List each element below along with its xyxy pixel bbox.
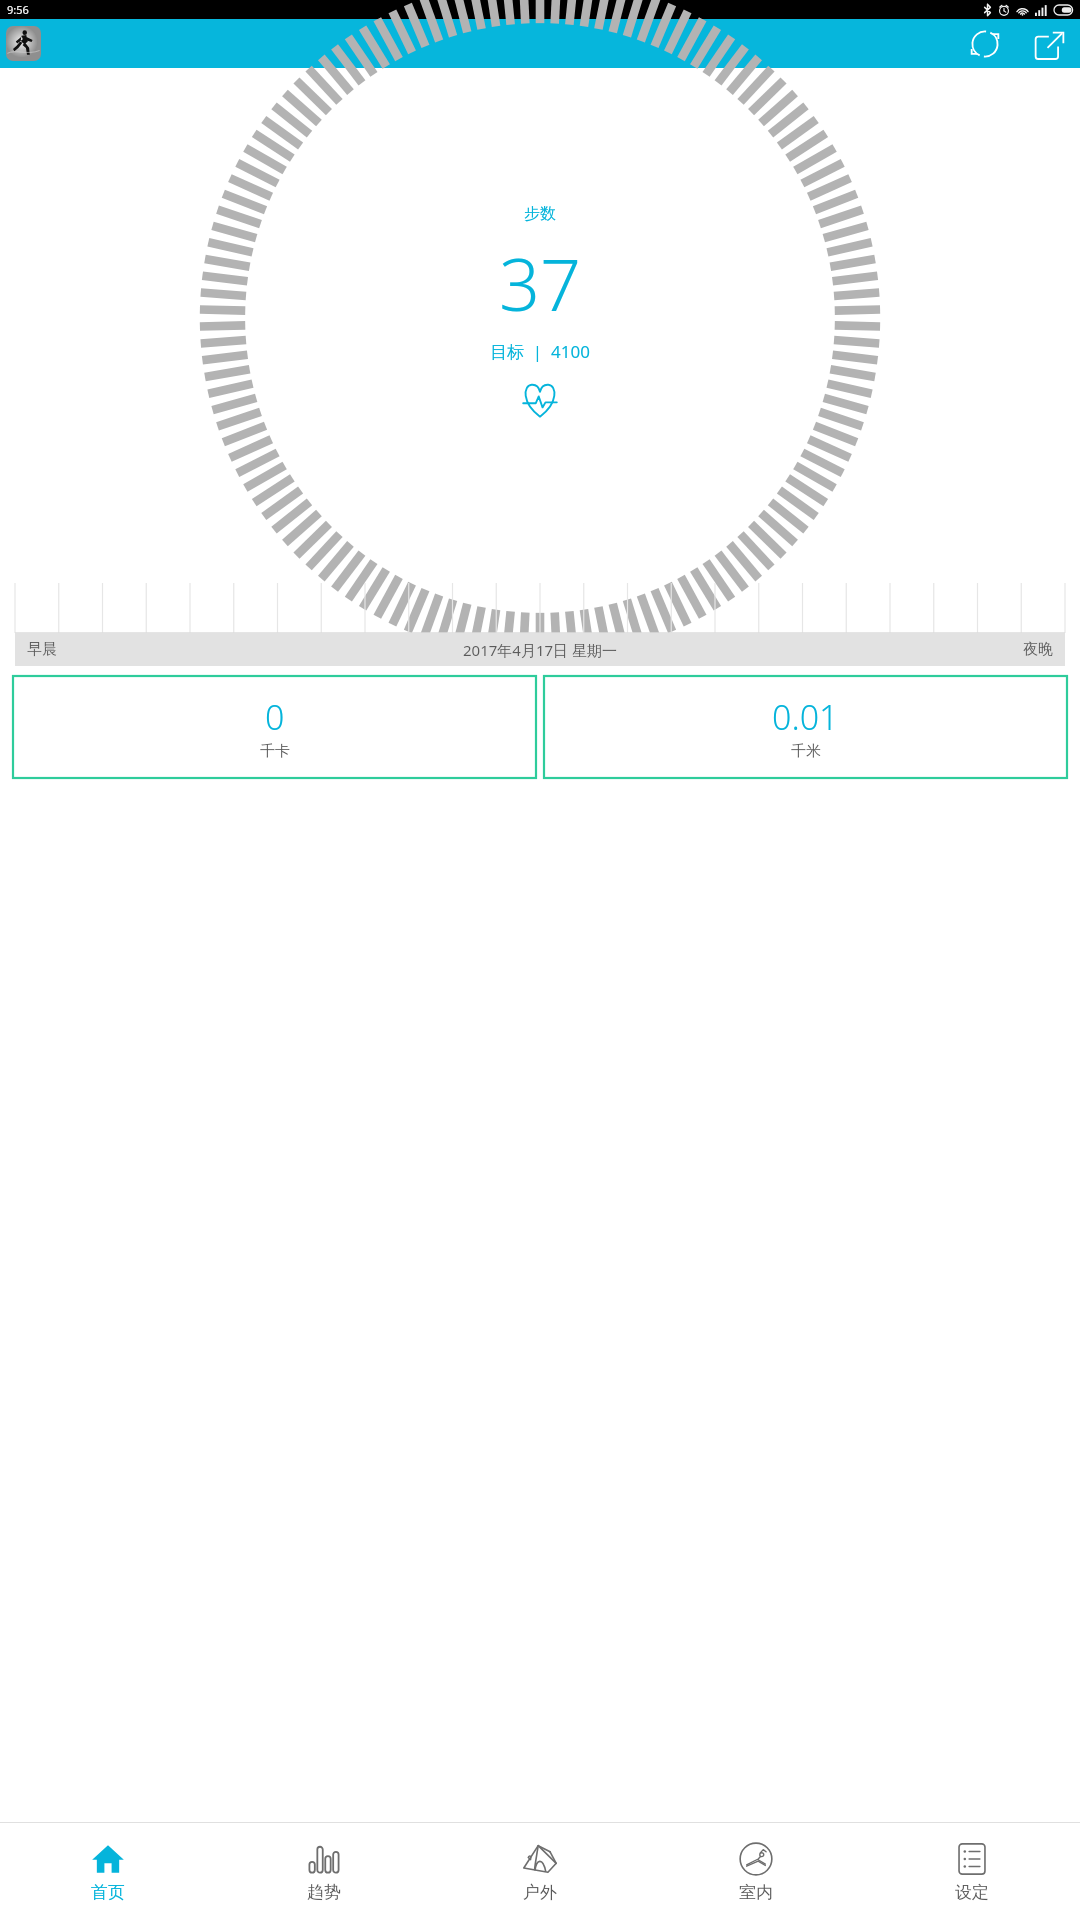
staticText: 千米 <box>791 742 821 761</box>
staticText: 设定 <box>955 1882 989 1903</box>
button[interactable]: 室内 <box>648 1823 864 1920</box>
staticText: 千卡 <box>260 742 290 761</box>
button[interactable]: Heart rate <box>518 377 562 421</box>
button[interactable]: 早晨 <box>15 633 1065 666</box>
button[interactable]: App icon <box>6 26 41 61</box>
staticText: 0.01 <box>772 694 839 740</box>
staticText: 9:56 <box>7 2 29 17</box>
staticText: 首页 <box>91 1882 125 1903</box>
staticText: 37 <box>499 234 582 332</box>
button[interactable]: 0.01 <box>544 676 1067 778</box>
button[interactable]: 首页 <box>0 1823 216 1920</box>
button[interactable]: 设定 <box>864 1823 1080 1920</box>
staticText: 趋势 <box>307 1882 341 1903</box>
button[interactable]: Sync <box>964 23 1006 65</box>
button[interactable]: 0 <box>13 676 536 778</box>
staticText: 室内 <box>739 1882 773 1903</box>
staticText: 2017年4月17日 星期一 <box>463 640 617 660</box>
staticText: 户外 <box>523 1882 557 1903</box>
button[interactable]: Share <box>1028 23 1070 65</box>
staticText: 0 <box>265 694 285 740</box>
staticText: 夜晚 <box>1023 640 1053 659</box>
staticText: 目标 | 4100 <box>490 340 590 363</box>
button[interactable]: 户外 <box>432 1823 648 1920</box>
staticText: 早晨 <box>27 640 57 659</box>
staticText: 步数 <box>524 204 556 224</box>
button[interactable]: 趋势 <box>216 1823 432 1920</box>
